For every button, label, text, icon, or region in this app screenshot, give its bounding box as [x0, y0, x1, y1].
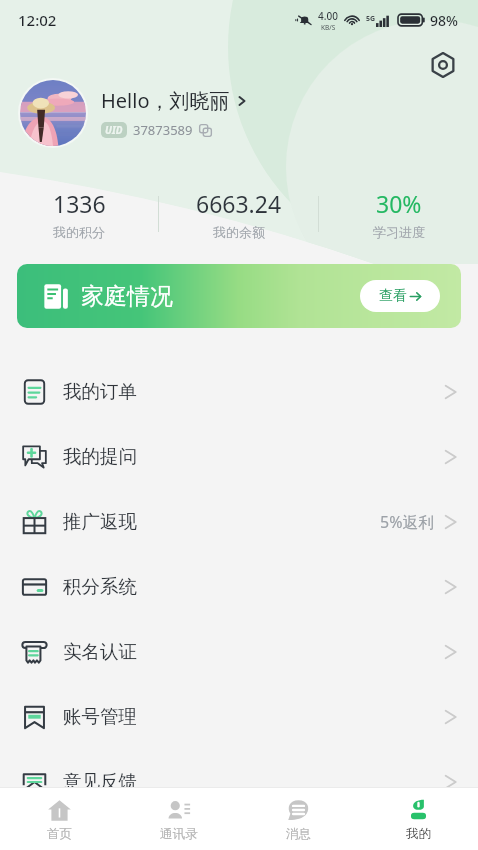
button[interactable]: 通讯录 — [119, 788, 238, 850]
button[interactable]: 我的 — [358, 788, 478, 850]
button[interactable]: 我的提问 — [0, 424, 478, 489]
staticText: 我的余额 — [213, 224, 265, 240]
staticText: 账号管理 — [63, 705, 137, 728]
staticText: 6663.24 — [196, 188, 282, 219]
button[interactable]: Settings — [426, 48, 460, 82]
staticText: 12:02 — [18, 10, 57, 30]
button[interactable]: 意见反馈 — [0, 749, 478, 814]
staticText: 我的积分 — [53, 224, 105, 240]
staticText: 学习进度 — [373, 224, 425, 240]
staticText: 实名认证 — [63, 640, 137, 663]
staticText: 98% — [430, 11, 458, 30]
staticText: 37873589 — [133, 121, 193, 139]
button[interactable]: 消息 — [238, 788, 358, 850]
staticText: 家庭情况 — [81, 282, 173, 311]
staticText: 4.00 — [318, 9, 338, 23]
button[interactable]: 账号管理 — [0, 684, 478, 749]
button[interactable]: 首页 — [0, 788, 119, 850]
button[interactable]: 家庭情况 — [17, 264, 461, 328]
staticText: 首页 — [47, 826, 72, 842]
staticText: 积分系统 — [63, 575, 137, 598]
staticText: 消息 — [286, 826, 311, 842]
button[interactable]: 查看 — [360, 280, 440, 312]
staticText: KB/S — [321, 23, 336, 32]
staticText: Hello，刘晓丽 — [101, 87, 230, 114]
staticText: 我的 — [406, 826, 431, 842]
staticText: 5G — [366, 14, 376, 24]
staticText: 推广返现 — [63, 510, 137, 533]
staticText: 通讯录 — [160, 826, 198, 842]
staticText: 5%返利 — [380, 511, 435, 533]
staticText: 1336 — [53, 188, 106, 219]
button[interactable]: 我的订单 — [0, 359, 478, 424]
button[interactable]: 推广返现 — [0, 489, 478, 554]
staticText: UID — [105, 123, 123, 137]
button[interactable]: 实名认证 — [0, 619, 478, 684]
staticText: 查看 — [379, 287, 407, 305]
staticText: 意见反馈 — [63, 770, 137, 793]
staticText: 30% — [376, 188, 422, 219]
staticText: 我的提问 — [63, 445, 137, 468]
button[interactable]: 积分系统 — [0, 554, 478, 619]
staticText: 我的订单 — [63, 380, 137, 403]
